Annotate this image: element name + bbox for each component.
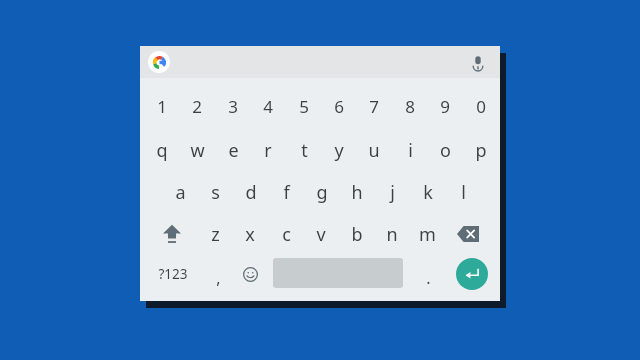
staticText: s [211, 180, 220, 205]
staticText: x [245, 222, 255, 247]
staticText: 3 [228, 95, 238, 118]
button[interactable]: 2 [180, 86, 214, 126]
button[interactable]: 3 [216, 86, 250, 126]
button[interactable]: q [145, 130, 179, 170]
staticText: h [351, 180, 363, 205]
button[interactable]: ?123 [150, 256, 196, 292]
button[interactable]: y [322, 130, 356, 170]
button[interactable]: o [428, 130, 462, 170]
button[interactable]: f [269, 172, 303, 212]
staticText: v [316, 222, 326, 247]
staticText: 7 [369, 95, 379, 118]
button[interactable]: w [180, 130, 214, 170]
button[interactable]: Google [148, 51, 170, 73]
button[interactable]: a [163, 172, 197, 212]
staticText: 4 [263, 95, 273, 118]
button[interactable]: 4 [251, 86, 285, 126]
button[interactable]: d [234, 172, 268, 212]
button[interactable]: h [340, 172, 374, 212]
staticText: m [419, 222, 436, 247]
staticText: f [283, 180, 290, 205]
staticText: 6 [334, 95, 344, 118]
button[interactable]: Voice input [468, 53, 488, 73]
staticText: y [334, 138, 344, 163]
staticText: b [351, 222, 363, 247]
staticText: i [408, 138, 413, 163]
staticText: k [423, 180, 433, 205]
button[interactable]: . [414, 262, 442, 294]
staticText: 9 [440, 95, 450, 118]
button[interactable]: , [204, 262, 232, 294]
staticText: w [190, 138, 205, 163]
button[interactable]: n [375, 214, 409, 254]
button[interactable]: 0 [464, 86, 498, 126]
staticText: r [264, 138, 272, 163]
button[interactable]: 8 [393, 86, 427, 126]
staticText: , [216, 267, 221, 289]
button[interactable]: t [287, 130, 321, 170]
staticText: p [475, 138, 487, 163]
staticText: j [390, 180, 395, 205]
button[interactable]: z [198, 214, 232, 254]
button[interactable]: Enter [456, 258, 488, 290]
staticText: 0 [476, 95, 486, 118]
staticText: u [368, 138, 380, 163]
button[interactable]: p [464, 130, 498, 170]
button[interactable]: i [393, 130, 427, 170]
button[interactable]: r [251, 130, 285, 170]
button[interactable]: e [216, 130, 250, 170]
button[interactable]: j [375, 172, 409, 212]
staticText: q [156, 138, 168, 163]
button[interactable]: b [340, 214, 374, 254]
staticText: l [461, 180, 466, 205]
staticText: 5 [299, 95, 309, 118]
staticText: n [386, 222, 398, 247]
button[interactable]: k [411, 172, 445, 212]
staticText: t [301, 138, 308, 163]
button[interactable]: 6 [322, 86, 356, 126]
button[interactable]: l [446, 172, 480, 212]
button[interactable]: g [305, 172, 339, 212]
button[interactable]: 5 [287, 86, 321, 126]
button[interactable]: m [410, 214, 444, 254]
button[interactable]: Shift [154, 216, 190, 252]
staticText: d [245, 180, 257, 205]
staticText: g [316, 180, 328, 205]
button[interactable]: Backspace [450, 216, 486, 252]
staticText: c [282, 222, 291, 247]
button[interactable]: 7 [357, 86, 391, 126]
button[interactable]: 1 [145, 86, 179, 126]
button[interactable]: x [233, 214, 267, 254]
button[interactable]: 9 [428, 86, 462, 126]
staticText: 8 [405, 95, 415, 118]
button[interactable]: c [269, 214, 303, 254]
staticText: 1 [157, 95, 167, 118]
staticText: o [440, 138, 451, 163]
staticText: 2 [192, 95, 202, 118]
button[interactable]: s [198, 172, 232, 212]
staticText: ?123 [158, 265, 188, 283]
staticText: z [211, 222, 220, 247]
staticText: e [228, 138, 239, 163]
button[interactable]: v [304, 214, 338, 254]
staticText: . [426, 267, 431, 289]
staticText: a [175, 180, 186, 205]
button[interactable]: Emoji [234, 258, 266, 290]
button[interactable]: u [357, 130, 391, 170]
